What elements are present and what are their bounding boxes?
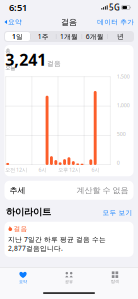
button[interactable]: 공유 [46, 267, 92, 284]
staticText: 지난 7일간 하루 평균 걸음 수는 2,877걸음입니다. [8, 235, 106, 253]
staticText: 3,241 [5, 49, 46, 70]
staticText: 1,000 [117, 102, 130, 109]
staticText: 6개월 [86, 32, 104, 41]
staticText: 걸음 [47, 59, 61, 68]
staticText: 오전 12시 [5, 166, 27, 173]
staticText: 5G [109, 2, 120, 13]
staticText: 추세 [9, 185, 25, 195]
button[interactable]: 1일 [5, 32, 30, 41]
button[interactable]: 모두 보기 [102, 209, 132, 217]
staticText: 하이라이트 [6, 206, 51, 218]
button[interactable]: 6개월 [82, 32, 107, 41]
staticText: 년 [117, 32, 124, 41]
staticText: 모두 보기 [102, 209, 132, 217]
staticText: 계산할 수 없음 [76, 185, 128, 195]
button[interactable]: 추세 [0, 176, 138, 200]
staticText: 오늘 [5, 65, 15, 71]
staticText: 1개월 [60, 32, 78, 41]
button[interactable]: 1개월 [56, 32, 82, 41]
button[interactable]: 년 [108, 32, 133, 41]
button[interactable]: 탐색 [92, 267, 138, 284]
staticText: 총 [5, 48, 10, 54]
staticText: 6시 [91, 166, 99, 173]
staticText: 500 [117, 130, 126, 137]
staticText: 0 [117, 159, 120, 166]
staticText: 6시 [38, 166, 46, 173]
staticText: 걸음 [61, 17, 77, 27]
staticText: 오후 12시 [58, 166, 80, 173]
staticText: 6:51 [9, 1, 27, 14]
staticText: 요약 [8, 18, 22, 26]
button[interactable]: 데이터 추가 [95, 15, 136, 29]
staticText: 1,500 [117, 73, 130, 80]
staticText: 1주 [38, 32, 49, 41]
staticText: 요약 [19, 279, 27, 284]
staticText: 공유 [65, 279, 73, 284]
staticText: 데이터 추가 [97, 18, 134, 26]
staticText: 걸음 [14, 225, 28, 233]
button[interactable]: 요약 [0, 267, 46, 284]
button[interactable]: 1주 [31, 32, 56, 41]
staticText: 1일 [12, 32, 23, 41]
staticText: 탐색 [111, 279, 119, 284]
button[interactable]: 요약 [1, 15, 24, 29]
